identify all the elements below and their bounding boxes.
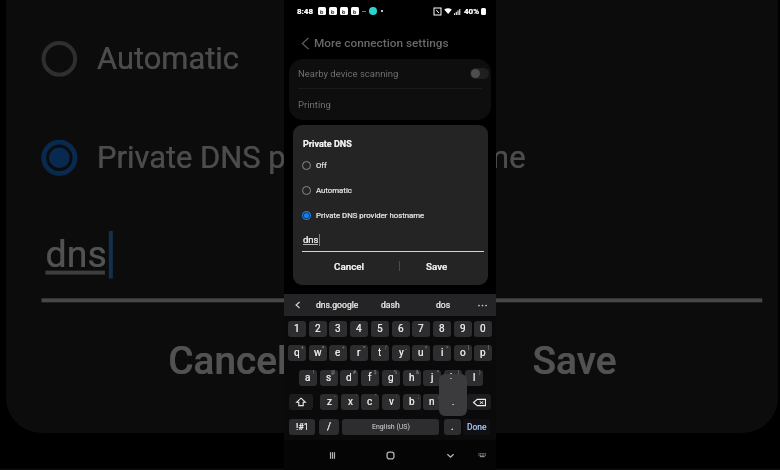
staticText: o — [460, 347, 466, 359]
staticText: p — [480, 347, 486, 359]
button[interactable]: 2 — [309, 321, 327, 337]
button[interactable]: Save — [397, 256, 477, 276]
button[interactable]: v — [382, 394, 400, 410]
button[interactable]: Off — [302, 157, 488, 173]
button[interactable]: Cancel — [69, 318, 386, 397]
button[interactable]: Navigate up — [295, 33, 315, 53]
button[interactable]: l — [465, 370, 483, 386]
staticText: z — [327, 396, 332, 408]
button[interactable]: 6 — [392, 321, 410, 337]
button[interactable]: 0 — [474, 321, 492, 337]
button[interactable]: Private DNS provider hostname — [302, 207, 488, 223]
staticText: q — [294, 347, 300, 359]
button[interactable]: Recent apps — [321, 442, 343, 468]
button[interactable]: More suggestions — [473, 294, 492, 316]
button[interactable]: e — [329, 345, 347, 361]
button[interactable]: Automatic — [302, 182, 488, 198]
staticText: Cancel — [334, 261, 364, 272]
button[interactable]: f — [361, 370, 379, 386]
button[interactable]: !#1 — [289, 419, 315, 435]
button[interactable]: a — [299, 370, 317, 386]
button[interactable]: p — [474, 345, 492, 361]
button[interactable]: Cancel — [309, 256, 389, 276]
button[interactable]: j — [423, 370, 441, 386]
button[interactable]: 8 — [433, 321, 451, 337]
staticText: k — [450, 372, 456, 384]
button[interactable]: z — [320, 394, 338, 410]
staticText: t — [378, 347, 382, 359]
staticText: 9 — [460, 323, 466, 335]
button[interactable]: 7 — [412, 321, 430, 337]
staticText: Nearby device scanning — [298, 68, 399, 79]
button[interactable]: Save — [418, 318, 734, 397]
staticText: . — [452, 397, 455, 408]
button[interactable]: 9 — [454, 321, 472, 337]
button[interactable]: h — [403, 370, 421, 386]
button[interactable]: Automatic — [41, 25, 778, 88]
button[interactable]: 3 — [329, 321, 347, 337]
staticText: # — [353, 370, 356, 375]
button[interactable]: Previous suggestions — [288, 294, 307, 316]
button[interactable]: / — [319, 419, 339, 435]
button[interactable]: Done — [463, 419, 490, 435]
staticText: , — [438, 394, 439, 399]
staticText: Private DNS provider hostname — [97, 140, 529, 176]
button[interactable]: Private DNS provider hostname — [41, 124, 778, 187]
button[interactable]: k — [444, 370, 462, 386]
button[interactable]: English (US) — [342, 419, 439, 435]
button[interactable]: u — [412, 345, 430, 361]
staticText: i — [441, 347, 444, 359]
staticText: dns — [45, 231, 109, 275]
button[interactable]: Nearby device scanning — [298, 59, 489, 88]
staticText: Off — [316, 161, 327, 170]
button[interactable]: i — [433, 345, 451, 361]
staticText: b — [353, 8, 357, 15]
staticText: [ — [468, 345, 470, 350]
button[interactable]: y — [392, 345, 410, 361]
button[interactable]: Shift — [289, 394, 313, 410]
staticText: Save — [426, 261, 448, 272]
staticText: 6 — [398, 323, 404, 335]
button[interactable]: g — [382, 370, 400, 386]
staticText: = — [363, 345, 366, 350]
staticText: _ — [405, 345, 408, 350]
button[interactable]: n — [423, 394, 441, 410]
button[interactable]: Home — [379, 442, 401, 468]
button[interactable]: dos — [417, 294, 470, 316]
button[interactable]: dns.google — [311, 294, 364, 316]
button[interactable]: x — [341, 394, 359, 410]
button[interactable]: q — [288, 345, 306, 361]
staticText: 3 — [335, 323, 341, 335]
button[interactable]: t — [371, 345, 389, 361]
button[interactable]: b — [403, 394, 421, 410]
button[interactable]: o — [454, 345, 472, 361]
button[interactable]: dash — [364, 294, 417, 316]
staticText: Printing — [298, 99, 331, 110]
button[interactable]: Hide keyboard — [439, 442, 461, 468]
button[interactable]: Backspace — [467, 394, 491, 410]
button[interactable]: . — [444, 419, 461, 435]
staticText: c — [367, 396, 373, 408]
button[interactable]: s — [320, 370, 338, 386]
button[interactable]: Printing — [298, 89, 482, 120]
staticText: n — [429, 396, 435, 408]
button[interactable]: 1 — [288, 321, 306, 337]
staticText: dash — [381, 300, 400, 310]
button[interactable]: c — [361, 394, 379, 410]
staticText: 5 — [377, 323, 383, 335]
button[interactable]: r — [350, 345, 368, 361]
staticText: / — [385, 345, 387, 350]
staticText: Done — [467, 422, 487, 432]
button[interactable]: d — [340, 370, 358, 386]
button[interactable]: Change keyboard — [471, 442, 493, 468]
button[interactable]: 4 — [350, 321, 368, 337]
staticText: m — [449, 396, 458, 408]
button[interactable]: 5 — [371, 321, 389, 337]
button[interactable]: m — [444, 394, 462, 410]
button[interactable]: w — [309, 345, 327, 361]
